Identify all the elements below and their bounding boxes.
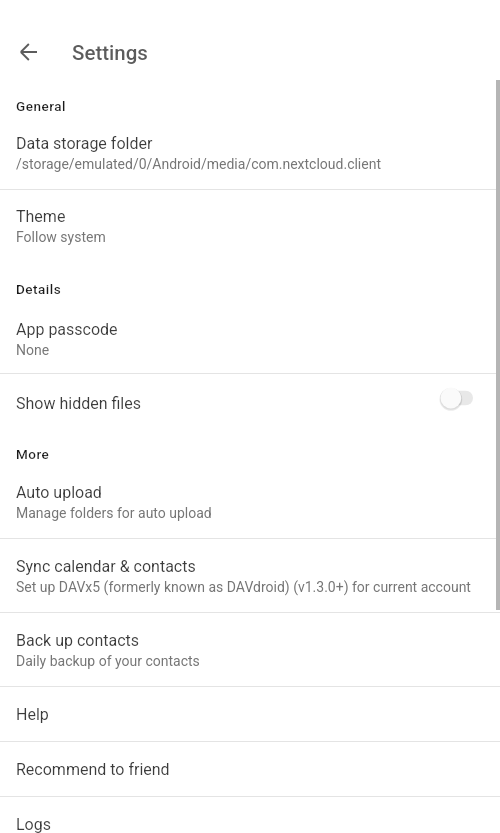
- staticText: App passcode: [16, 320, 118, 339]
- staticText: More: [16, 446, 50, 462]
- staticText: Follow system: [16, 229, 106, 245]
- staticText: Recommend to friend: [16, 760, 170, 779]
- staticText: Details: [16, 281, 62, 297]
- staticText: None: [16, 342, 50, 358]
- button[interactable]: Data storage folder: [0, 114, 500, 189]
- staticText: Daily backup of your contacts: [16, 653, 200, 669]
- button[interactable]: Theme: [0, 190, 500, 259]
- staticText: /storage/emulated/0/Android/media/com.ne…: [16, 156, 382, 172]
- button[interactable]: Back: [8, 32, 48, 72]
- staticText: Auto upload: [16, 483, 102, 502]
- button[interactable]: App passcode: [0, 304, 500, 373]
- button[interactable]: Recommend to friend: [0, 742, 500, 796]
- staticText: Sync calendar & contacts: [16, 557, 196, 576]
- button[interactable]: Logs: [0, 797, 500, 833]
- button[interactable]: Show hidden files: [0, 374, 500, 429]
- staticText: General: [16, 98, 66, 114]
- staticText: Back up contacts: [16, 631, 140, 650]
- button[interactable]: Sync calendar & contacts: [0, 539, 500, 612]
- staticText: Help: [16, 705, 49, 724]
- staticText: Data storage folder: [16, 134, 153, 153]
- staticText: Settings: [72, 41, 148, 65]
- staticText: Manage folders for auto upload: [16, 505, 212, 521]
- button[interactable]: Back up contacts: [0, 613, 500, 686]
- button[interactable]: Help: [0, 687, 500, 741]
- staticText: Logs: [16, 815, 51, 833]
- button[interactable]: Show hidden files toggle: [432, 374, 480, 422]
- staticText: Theme: [16, 207, 66, 226]
- staticText: Show hidden files: [16, 394, 141, 413]
- staticText: Set up DAVx5 (formerly known as DAVdroid…: [16, 579, 471, 595]
- button[interactable]: Auto upload: [0, 474, 500, 538]
